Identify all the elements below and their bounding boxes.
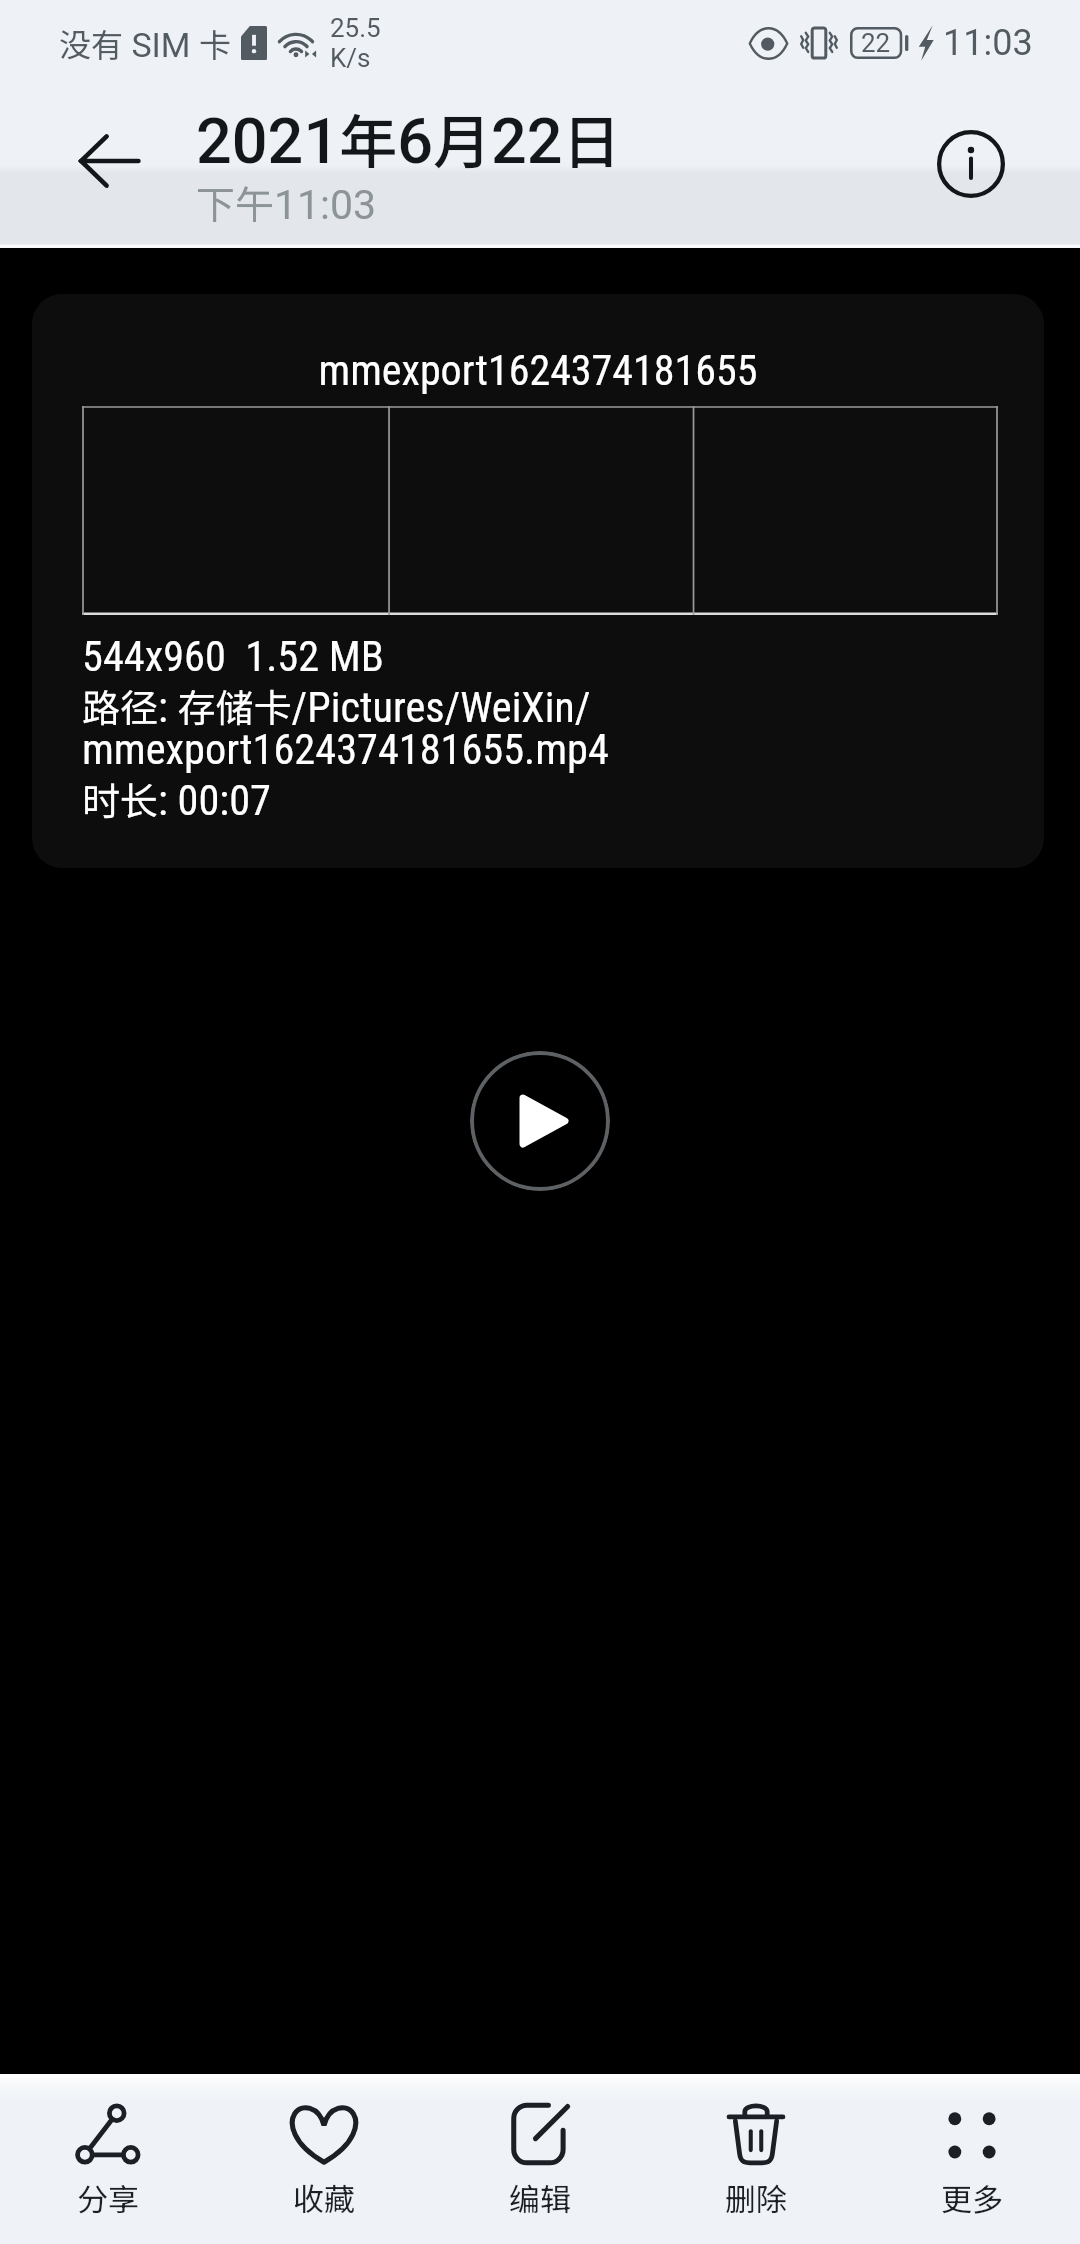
staticText: 分享 <box>77 2175 139 2220</box>
staticText: 删除 <box>725 2175 787 2220</box>
button[interactable]: Info <box>923 116 1019 212</box>
staticText: K/s <box>330 43 371 73</box>
staticText: 2021年6月22日 <box>196 96 621 180</box>
staticText: mmexport1624374181655.mp4 <box>82 725 609 775</box>
staticText: 544x960 1.52 MB <box>82 632 384 682</box>
button[interactable]: Back <box>55 107 163 215</box>
staticText: 收藏 <box>293 2175 355 2220</box>
staticText: mmexport1624374181655 <box>32 346 1044 395</box>
staticText: 时长: 00:07 <box>82 771 271 826</box>
staticText: 25.5 <box>330 13 381 43</box>
staticText: 没有 SIM 卡 <box>59 20 231 66</box>
button[interactable]: 编辑 <box>432 2074 648 2244</box>
button[interactable]: 分享 <box>0 2074 216 2244</box>
staticText: 11:03 <box>943 22 1033 64</box>
staticText: 路径: 存储卡/Pictures/WeiXin/ <box>82 678 591 733</box>
staticText: 更多 <box>941 2175 1003 2220</box>
button[interactable]: Play <box>470 1051 610 1191</box>
button[interactable]: 删除 <box>648 2074 864 2244</box>
button[interactable]: mmexport1624374181655 <box>32 294 1044 868</box>
button[interactable]: 收藏 <box>216 2074 432 2244</box>
button[interactable]: 更多 <box>864 2074 1080 2244</box>
staticText: 下午11:03 <box>196 174 377 230</box>
staticText: 编辑 <box>509 2175 571 2220</box>
staticText: 22 <box>861 28 891 58</box>
